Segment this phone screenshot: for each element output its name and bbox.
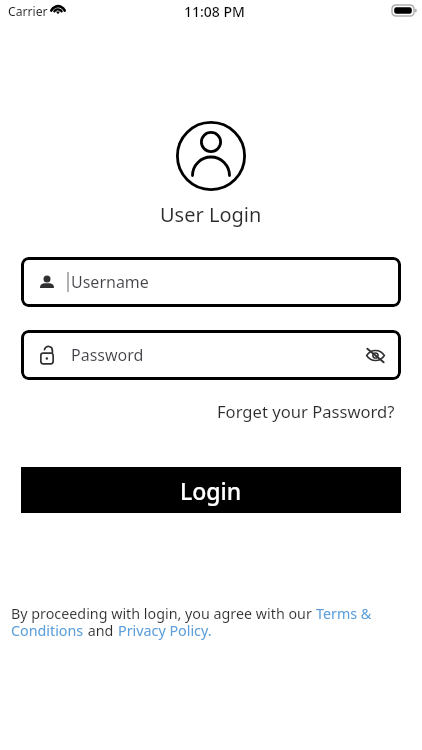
staticText: Forget your Password? [217,400,395,423]
staticText: Password [71,344,144,366]
staticText: and [84,621,118,640]
button[interactable]: Show password [364,344,388,366]
staticText: Privacy Policy. [118,621,212,640]
staticText: Terms & [316,604,372,623]
button[interactable]: Conditions [11,621,84,640]
staticText: Conditions [11,621,84,640]
staticText: By proceeding with login, you agree with… [11,604,316,623]
staticText: User Login [160,201,262,228]
button[interactable]: Terms & [316,604,372,623]
button[interactable]: Username [21,257,401,307]
staticText: Username [71,271,149,293]
button[interactable]: Privacy Policy. [118,621,212,640]
staticText: Login [180,475,242,506]
button[interactable]: Password [21,330,401,380]
other: Wi-Fi signal [50,0,68,15]
button[interactable]: Forget your Password? [217,399,395,424]
staticText: 11:08 PM [184,2,245,21]
button[interactable]: Login [21,467,401,513]
other: Battery full [392,5,417,16]
staticText: Carrier [8,3,48,20]
